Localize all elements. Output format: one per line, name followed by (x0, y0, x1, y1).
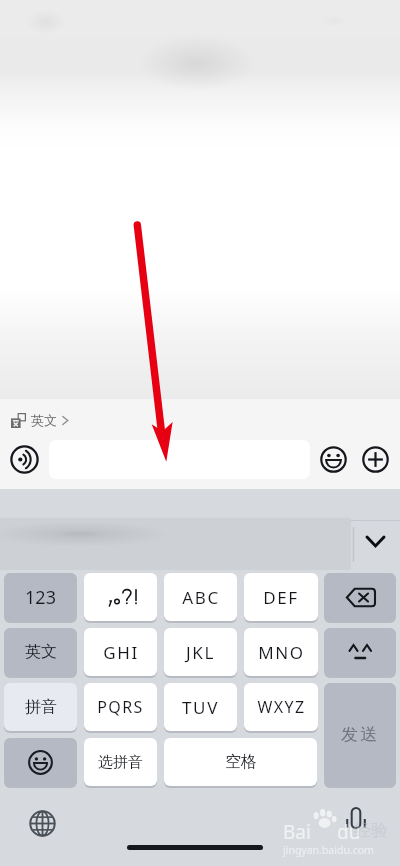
button[interactable]: 123 (4, 573, 77, 621)
staticText: 选拼音 (98, 753, 143, 772)
staticText: TUV (182, 696, 219, 719)
staticText: Bai (283, 819, 311, 845)
other: Translate (11, 413, 26, 428)
button[interactable]: Translate (11, 409, 69, 431)
button[interactable]: PQRS (84, 683, 157, 731)
button[interactable]: MNO (244, 628, 318, 676)
button[interactable]: JKL (164, 628, 237, 676)
staticText: ABC (182, 586, 220, 609)
button[interactable] (49, 440, 310, 479)
staticText: 拼音 (25, 697, 57, 717)
staticText: DEF (263, 586, 299, 609)
staticText: 空格 (225, 752, 257, 772)
staticText: 123 (25, 585, 56, 610)
button[interactable]: 拼音 (4, 683, 77, 731)
button[interactable]: Microphone (340, 805, 372, 837)
staticText: GHI (103, 641, 139, 664)
staticText: JKL (186, 641, 215, 664)
button[interactable]: More options (362, 446, 389, 473)
staticText: du (337, 819, 361, 845)
button[interactable]: GHI (84, 628, 157, 676)
button[interactable]: Switch language (28, 809, 57, 838)
button[interactable] (324, 628, 396, 676)
button[interactable] (324, 573, 396, 621)
button[interactable]: Voice input (10, 445, 39, 474)
staticText: 经验 (354, 820, 388, 841)
button[interactable]: 发送 (324, 683, 396, 786)
staticText: WXYZ (257, 696, 306, 718)
staticText: 英文 (25, 642, 57, 662)
staticText: 发送 (341, 724, 380, 745)
staticText: jingyan.baidu.com (283, 843, 374, 857)
button[interactable]: Emoji (320, 446, 347, 473)
button[interactable]: 空格 (164, 738, 317, 786)
button[interactable]: WXYZ (244, 683, 318, 731)
button[interactable]: 选拼音 (84, 738, 157, 786)
button[interactable] (4, 738, 77, 786)
button[interactable]: TUV (164, 683, 237, 731)
button[interactable]: ABC (164, 573, 237, 621)
staticText: MNO (258, 641, 305, 664)
staticText: 英文 (31, 412, 57, 428)
staticText: PQRS (97, 696, 144, 718)
button[interactable]: Hide keyboard (355, 519, 400, 567)
button[interactable]: DEF (244, 573, 318, 621)
button[interactable] (84, 573, 157, 621)
button[interactable]: 英文 (4, 628, 77, 676)
